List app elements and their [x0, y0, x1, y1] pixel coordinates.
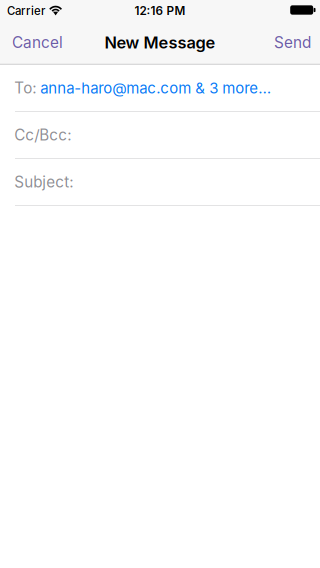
staticText: To:: [14, 79, 36, 97]
staticText: Send: [274, 33, 311, 52]
staticText: 12:16 PM: [134, 4, 185, 18]
staticText: Carrier: [7, 4, 45, 18]
staticText: Cancel: [12, 33, 63, 52]
staticText: Cc/Bcc:: [14, 126, 71, 144]
staticText: New Message: [104, 33, 215, 52]
button[interactable]: Cancel: [0, 19, 73, 63]
staticText: anna-haro@mac.com & 3 more…: [40, 79, 271, 97]
staticText: Subject:: [14, 173, 73, 191]
button[interactable]: Send: [264, 19, 320, 63]
